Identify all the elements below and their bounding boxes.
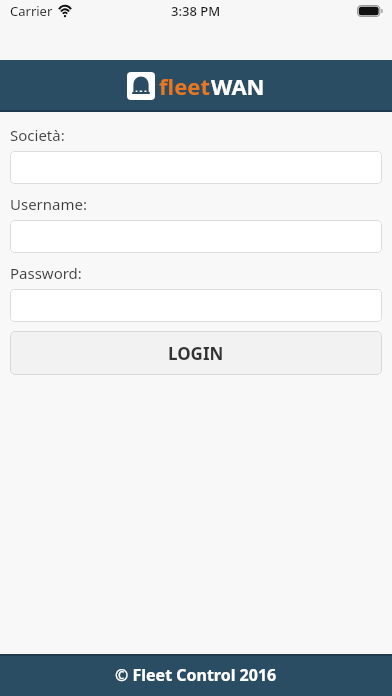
staticText: Carrier [10, 2, 53, 20]
button[interactable] [10, 220, 382, 253]
staticText: Password: [10, 263, 82, 283]
staticText: WAN [211, 71, 265, 101]
staticText: Username: [10, 194, 87, 214]
button[interactable] [10, 289, 382, 322]
button[interactable] [10, 151, 382, 184]
staticText: © Fleet Control 2016 [115, 664, 277, 686]
staticText: fleet [159, 71, 211, 101]
staticText: LOGIN [168, 342, 224, 365]
button[interactable]: LOGIN [10, 331, 382, 375]
staticText: Società: [10, 125, 65, 145]
staticText: 3:38 PM [171, 2, 221, 20]
